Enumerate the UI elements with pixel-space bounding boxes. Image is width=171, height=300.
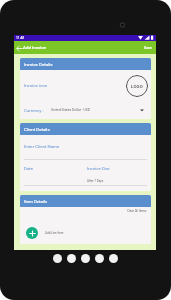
button[interactable]: Gmail	[53, 254, 62, 263]
staticText: Save	[144, 46, 152, 50]
staticText: Item Details	[24, 199, 48, 204]
button[interactable]: Save	[140, 41, 156, 54]
button[interactable]: Enter Client Name	[24, 144, 60, 149]
button[interactable]: Invoice Due	[87, 166, 110, 183]
button[interactable]: Currency :	[20, 103, 151, 117]
button[interactable]: Invoice Details	[20, 58, 151, 70]
button[interactable]: YouTube	[81, 254, 90, 263]
staticText: United States Dollar - USD	[51, 108, 90, 112]
button[interactable]: Date	[24, 166, 34, 171]
button[interactable]: Item Details	[20, 195, 151, 207]
button[interactable]: Clear All Items	[20, 209, 151, 213]
staticText: Currency :	[24, 108, 44, 113]
staticText: Invoice icon	[24, 83, 48, 88]
staticText: Invoice Details	[24, 62, 53, 67]
staticText: Add Line Item	[45, 231, 64, 235]
staticText: Enter Client Name	[24, 144, 60, 149]
staticText: LOGO	[131, 84, 143, 89]
button[interactable]: Client Details	[20, 123, 151, 135]
staticText: After 7 Days	[87, 179, 104, 183]
button[interactable]: Add Line Item	[20, 221, 151, 244]
button[interactable]: Chrome	[67, 254, 76, 263]
button[interactable]: Apps	[109, 254, 118, 263]
staticText: Invoice Due	[87, 166, 110, 171]
button[interactable]: Photos	[95, 254, 104, 263]
button[interactable]: Invoice icon	[24, 83, 48, 88]
button[interactable]: Back	[14, 43, 24, 53]
staticText: 11:48	[16, 36, 25, 40]
button[interactable]: Invoice logo	[126, 75, 148, 97]
staticText: Add Invoice	[23, 45, 47, 50]
staticText: Clear All Items	[127, 209, 147, 213]
staticText: Client Details	[24, 127, 50, 132]
staticText: Date	[24, 166, 34, 171]
